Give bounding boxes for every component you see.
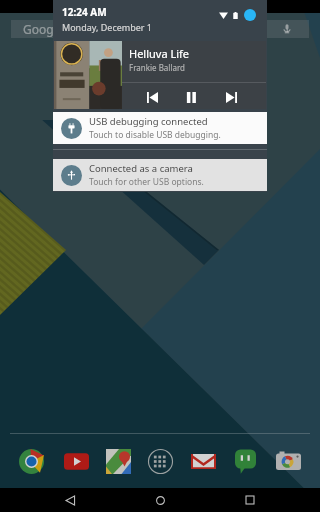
- staticText: Connected as a camera: [89, 162, 193, 175]
- staticText: Monday, December 1: [62, 21, 153, 33]
- button[interactable]: Maps: [101, 444, 135, 478]
- staticText: Touch to disable USB debugging.: [89, 129, 221, 141]
- button[interactable]: Hangouts: [228, 444, 262, 478]
- button[interactable]: Apps: [143, 444, 177, 478]
- button[interactable]: Helluva Life: [54, 41, 266, 109]
- button[interactable]: Chrome: [14, 444, 48, 478]
- button[interactable]: Gmail: [186, 444, 220, 478]
- button[interactable]: Recent apps: [230, 488, 270, 512]
- button[interactable]: Back: [50, 488, 90, 512]
- button[interactable]: Connected as a camera: [53, 159, 267, 191]
- button[interactable]: YouTube: [59, 444, 93, 478]
- staticText: Frankie Ballard: [129, 62, 186, 73]
- button[interactable]: Google: [11, 20, 309, 38]
- button[interactable]: User profile: [244, 9, 256, 21]
- staticText: 12:24 AM: [62, 5, 107, 19]
- other: Voice search: [282, 24, 292, 34]
- button[interactable]: Home: [140, 488, 180, 512]
- button[interactable]: Pause: [181, 87, 201, 107]
- button[interactable]: Camera: [271, 444, 305, 478]
- button[interactable]: USB debugging connected: [53, 112, 267, 144]
- staticText: Helluva Life: [129, 46, 190, 61]
- staticText: Touch for other USB options.: [89, 176, 204, 188]
- button[interactable]: Next: [221, 87, 241, 107]
- staticText: Google: [23, 21, 64, 37]
- staticText: USB debugging connected: [89, 115, 208, 128]
- button[interactable]: Previous: [142, 87, 162, 107]
